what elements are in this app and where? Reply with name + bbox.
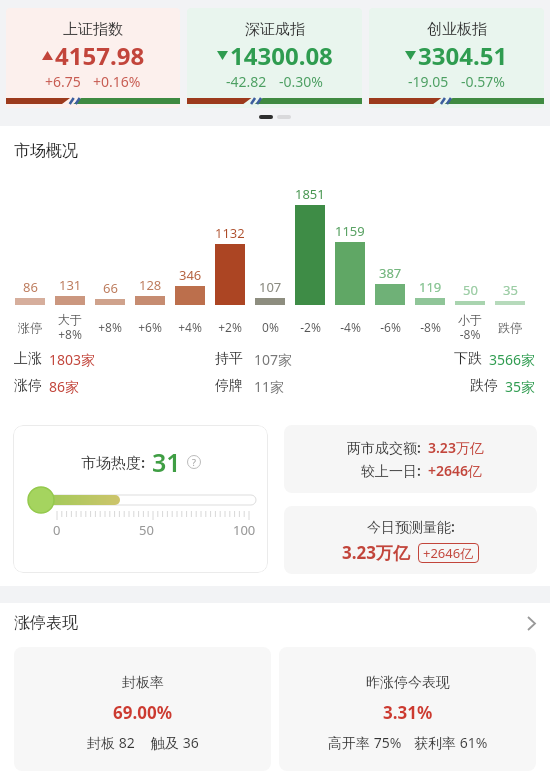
staticText: +2646亿 [423,544,474,562]
staticText: 涨停 [14,377,42,395]
staticText: +4% [178,319,202,335]
staticText: 387 [379,264,402,282]
staticText: 50 [463,281,478,299]
staticText: +8% [98,319,122,335]
staticText: +6% [138,319,162,335]
staticText: 69.00% [113,701,173,724]
staticText: 0 [53,521,61,539]
staticText: 市场概况 [14,141,78,161]
staticText: 触及 36 [151,733,199,752]
staticText: -42.82 [226,72,267,91]
staticText: +0.16% [93,72,141,91]
staticText: -0.30% [279,72,323,91]
staticText: 昨涨停今表现 [366,674,450,692]
staticText: 131 [59,276,82,294]
button[interactable]: 今日预测量能: [284,506,537,574]
staticText: 1803家 [49,350,96,369]
staticText: 107家 [254,350,293,369]
button[interactable]: 两市成交额: [284,425,537,493]
staticText: 35 [503,281,518,299]
button[interactable]: 创业板指 [369,8,544,108]
staticText: -4% [340,319,361,335]
staticText: 市场热度: [81,452,146,472]
staticText: 封板 82 [87,733,135,752]
staticText: ? [192,456,196,468]
button[interactable]: 市场热度: [13,425,268,573]
staticText: 3304.51 [418,39,508,72]
staticText: 上证指数 [63,20,123,39]
staticText: 两市成交额: [347,438,421,457]
staticText: 35家 [505,377,536,396]
staticText: 获利率 61% [414,733,488,752]
staticText: 创业板指 [427,20,487,39]
staticText: 31 [152,445,181,479]
staticText: 3.23万亿 [428,438,484,457]
staticText: 跌停 [470,377,498,395]
staticText: -0.57% [461,72,505,91]
staticText: 今日预测量能: [367,517,455,536]
staticText: 1851 [295,185,325,203]
staticText: 128 [139,276,162,294]
staticText: 大于 +8% [58,312,82,342]
staticText: 涨停 [18,320,42,335]
staticText: 86家 [49,377,80,396]
staticText: 4157.98 [55,39,145,72]
staticText: 持平 [215,350,243,368]
button[interactable]: 上证指数 [6,8,180,108]
staticText: 346 [179,266,202,284]
staticText: 3566家 [489,350,536,369]
staticText: 107 [259,278,282,296]
staticText: -2% [300,319,321,335]
staticText: 停牌 [215,377,243,395]
staticText: 下跌 [454,350,482,368]
staticText: 1159 [335,222,365,240]
staticText: 86 [23,278,38,296]
staticText: 100 [233,521,256,539]
staticText: 涨停表现 [14,613,78,633]
staticText: +2% [218,319,242,335]
staticText: 0% [262,319,279,335]
staticText: -6% [380,319,401,335]
button[interactable]: 涨停表现 [14,613,536,633]
staticText: -19.05 [408,72,449,91]
staticText: 11家 [254,377,285,396]
staticText: 深证成指 [245,20,305,39]
staticText: 高开率 75% [328,733,402,752]
staticText: 66 [103,279,118,297]
staticText: 封板率 [122,674,164,692]
button[interactable]: 昨涨停今表现 [279,647,536,771]
staticText: 小于 -8% [458,312,482,342]
staticText: +6.75 [45,72,81,91]
staticText: 3.23万亿 [342,541,410,564]
staticText: 1132 [215,224,245,242]
staticText: 119 [419,278,442,296]
staticText: +2646亿 [428,461,483,480]
button[interactable]: 封板率 [14,647,271,771]
button[interactable]: 深证成指 [187,8,362,108]
staticText: 跌停 [498,320,522,335]
staticText: 上涨 [14,350,42,368]
staticText: 3.31% [383,701,433,724]
staticText: 较上一日: [361,461,421,480]
staticText: 50 [139,521,154,539]
staticText: -8% [420,319,441,335]
staticText: 14300.08 [230,39,333,72]
